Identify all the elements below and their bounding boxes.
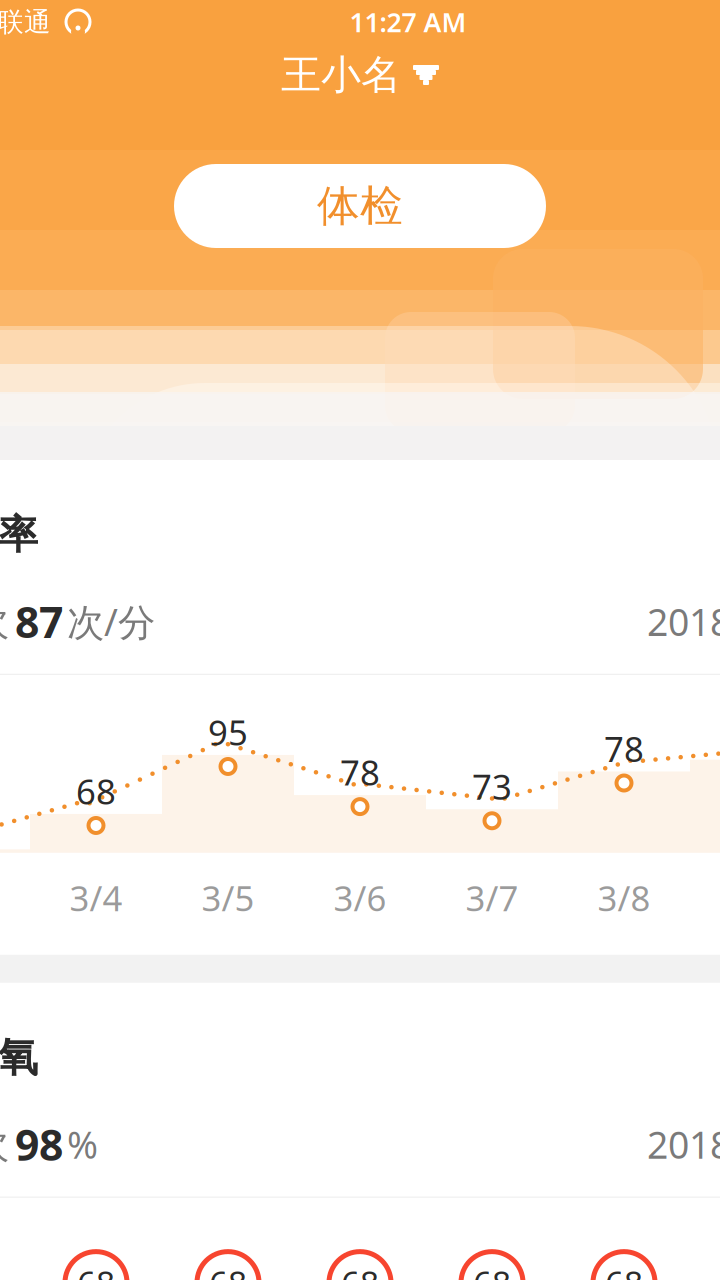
staticText: 3/8 bbox=[597, 875, 650, 921]
staticText: 73 bbox=[472, 763, 512, 809]
staticText: 68 bbox=[473, 1260, 511, 1280]
staticText: 心率 bbox=[0, 510, 38, 559]
staticText: 王小名 bbox=[281, 50, 401, 99]
staticText: 78 bbox=[340, 749, 380, 795]
button[interactable]: 王小名 bbox=[271, 44, 449, 105]
staticText: 68 bbox=[209, 1260, 247, 1280]
staticText: % bbox=[67, 1119, 98, 1169]
staticText: 68 bbox=[605, 1260, 643, 1280]
staticText: 上一次 bbox=[0, 598, 9, 644]
staticText: 3/6 bbox=[333, 875, 386, 921]
staticText: 体检 bbox=[317, 180, 403, 232]
staticText: 78 bbox=[604, 725, 644, 771]
staticText: 68 bbox=[77, 1260, 115, 1280]
staticText: 3/5 bbox=[201, 875, 254, 921]
staticText: 87 bbox=[15, 593, 63, 650]
staticText: 2018/3/10 bbox=[647, 1119, 720, 1169]
button[interactable]: 体检 bbox=[174, 164, 546, 248]
staticText: 68 bbox=[341, 1260, 379, 1280]
staticText: 11:27 AM bbox=[349, 4, 466, 40]
button[interactable]: O₂ bbox=[0, 983, 720, 1280]
staticText: 95 bbox=[208, 709, 248, 755]
staticText: 3/7 bbox=[465, 875, 518, 921]
staticText: 98 bbox=[15, 1116, 63, 1173]
staticText: 血氧 bbox=[0, 1033, 38, 1082]
staticText: 次/分 bbox=[67, 597, 155, 646]
staticText: 上一次 bbox=[0, 1121, 9, 1167]
button[interactable]: 心率 bbox=[0, 460, 720, 955]
staticText: 中国联通 bbox=[0, 6, 51, 38]
staticText: 2018/3/10 bbox=[647, 597, 720, 646]
staticText: 3/4 bbox=[69, 875, 122, 921]
staticText: 68 bbox=[76, 768, 116, 814]
